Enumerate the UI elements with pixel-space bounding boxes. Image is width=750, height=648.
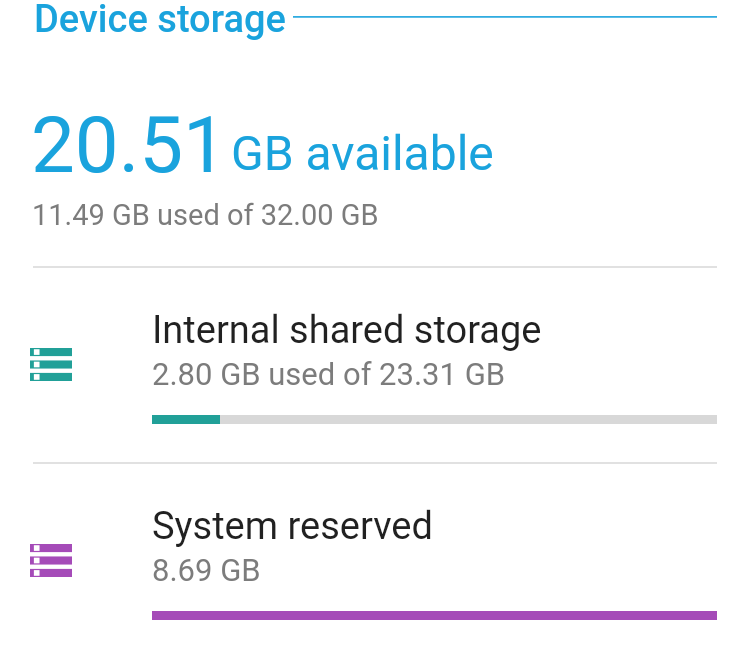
button[interactable]: Internal shared storage, 2.80 GB used of… — [0, 280, 750, 462]
staticText: 20.51 — [31, 100, 227, 191]
staticText: 8.69 GB — [152, 552, 261, 588]
button[interactable]: System reserved, 8.69 GB — [0, 476, 750, 648]
staticText: System reserved — [152, 504, 433, 549]
staticText: Internal shared storage — [152, 308, 542, 353]
staticText: 11.49 GB used of 32.00 GB — [32, 198, 379, 232]
staticText: GB available — [231, 125, 494, 181]
staticText: 2.80 GB used of 23.31 GB — [152, 356, 506, 392]
staticText: Device storage — [34, 0, 286, 42]
